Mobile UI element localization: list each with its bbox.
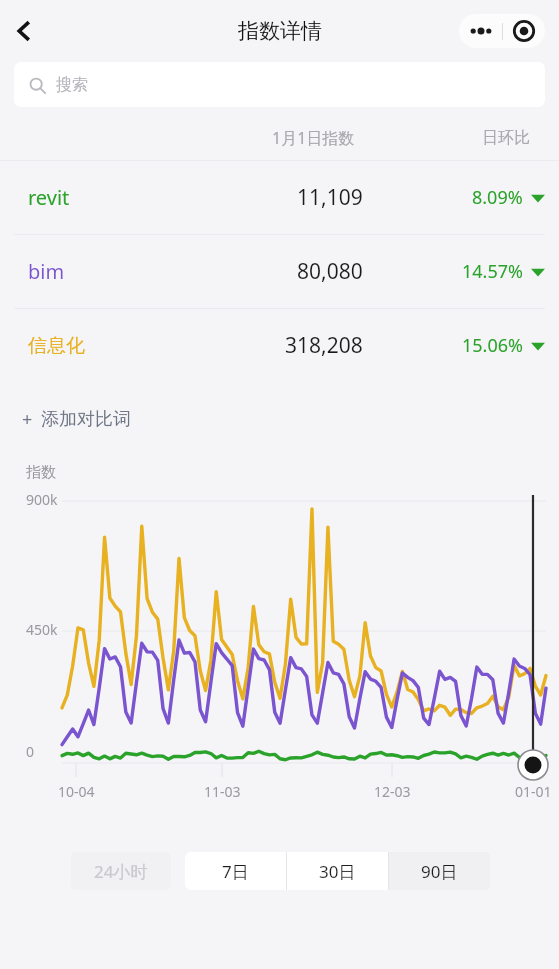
- button[interactable]: Close mini program: [503, 14, 545, 48]
- staticText: 11,109: [297, 183, 363, 212]
- button[interactable]: 7日: [185, 852, 286, 890]
- button[interactable]: More options: [459, 14, 502, 48]
- button[interactable]: 信息化: [0, 309, 559, 382]
- staticText: 添加对比词: [41, 408, 131, 431]
- button[interactable]: 搜索: [14, 62, 545, 107]
- staticText: bim: [28, 258, 65, 285]
- staticText: 900k: [26, 490, 58, 509]
- staticText: 8.09%: [472, 185, 523, 210]
- staticText: 指数: [26, 463, 56, 482]
- button[interactable]: bim: [0, 235, 559, 308]
- button[interactable]: 90日: [389, 852, 490, 890]
- staticText: 318,208: [285, 331, 363, 360]
- staticText: 搜索: [56, 75, 88, 95]
- button[interactable]: 24小时: [71, 852, 171, 890]
- staticText: revit: [28, 184, 70, 211]
- staticText: 信息化: [28, 334, 85, 358]
- staticText: 10-04: [58, 782, 95, 801]
- staticText: 日环比: [482, 128, 530, 148]
- staticText: 80,080: [297, 257, 363, 286]
- staticText: 90日: [421, 860, 458, 883]
- staticText: 指数详情: [238, 18, 322, 44]
- staticText: 12-03: [374, 782, 411, 801]
- staticText: 30日: [319, 860, 356, 883]
- staticText: 14.57%: [462, 259, 523, 284]
- button[interactable]: +: [22, 407, 131, 432]
- button[interactable]: revit: [0, 161, 559, 234]
- button[interactable]: 30日: [287, 852, 388, 890]
- staticText: 24小时: [94, 860, 148, 883]
- button[interactable]: Back: [2, 9, 46, 53]
- staticText: 0: [26, 742, 35, 761]
- staticText: 15.06%: [462, 333, 523, 358]
- staticText: +: [22, 407, 33, 432]
- staticText: 450k: [26, 620, 58, 639]
- staticText: 7日: [222, 860, 249, 883]
- staticText: 11-03: [204, 782, 241, 801]
- staticText: 1月1日指数: [272, 127, 355, 149]
- staticText: 01-01: [515, 782, 552, 801]
